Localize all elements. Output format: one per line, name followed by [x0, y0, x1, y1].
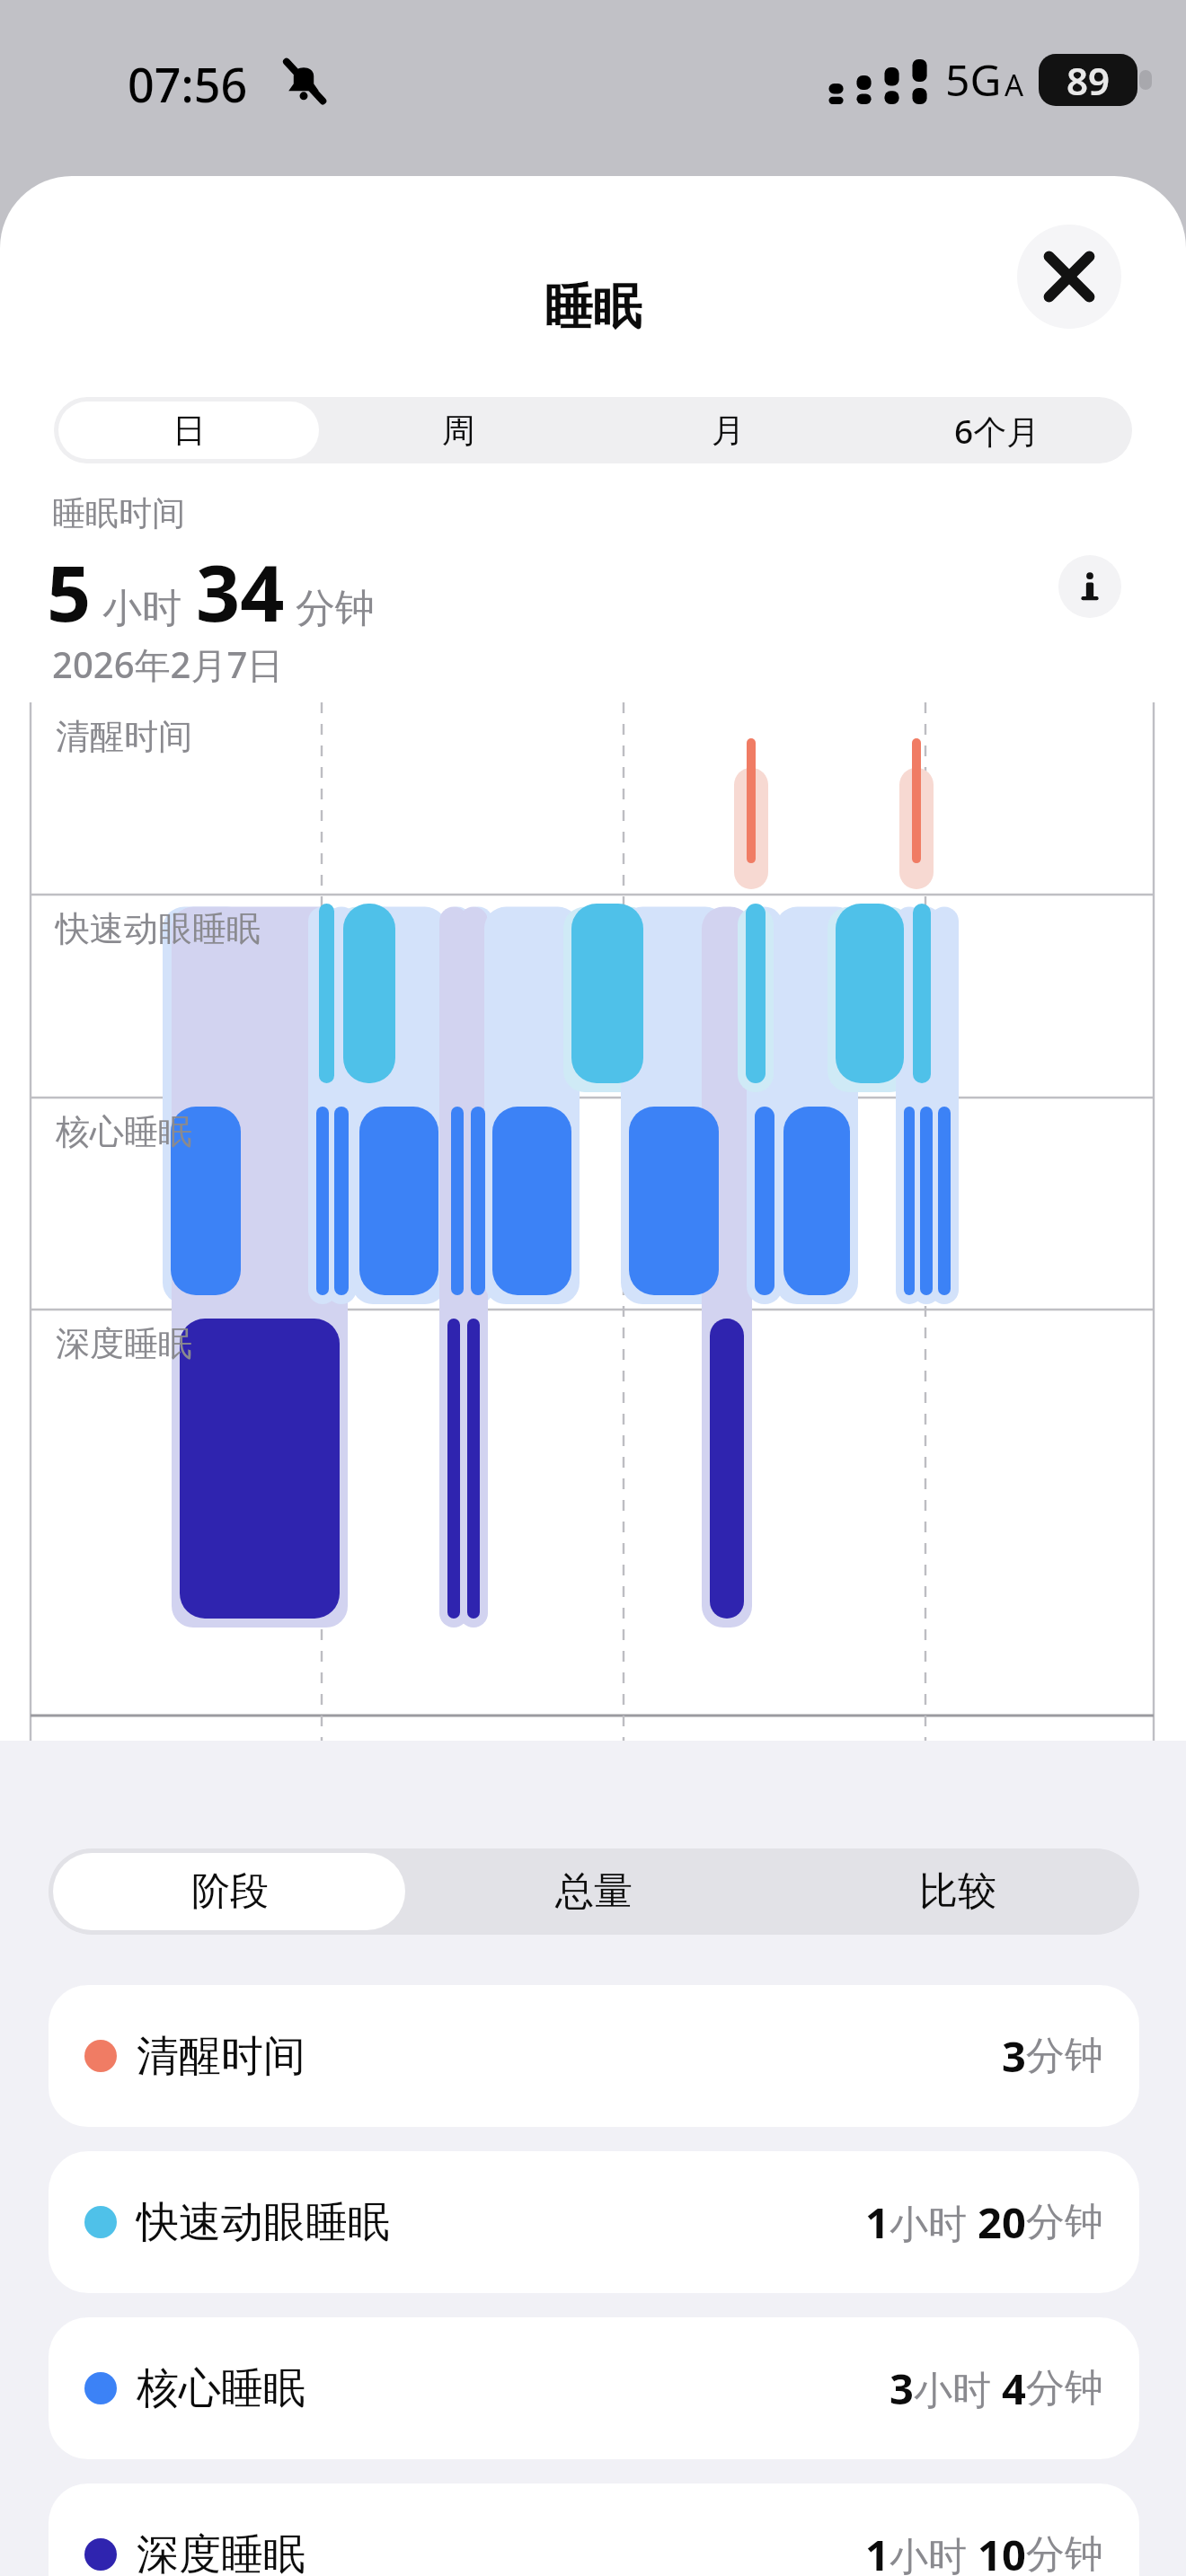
staticText: 睡眠: [0, 277, 1186, 338]
staticText: A: [1005, 65, 1024, 105]
staticText: 3: [889, 2360, 914, 2417]
staticText: 小时: [889, 2528, 978, 2576]
staticText: 5: [47, 539, 92, 644]
button[interactable]: 关闭: [1017, 225, 1121, 329]
staticText: 小时: [889, 2196, 978, 2249]
button[interactable]: 日: [54, 397, 323, 463]
staticText: 快速动眼睡眠: [56, 907, 261, 950]
staticText: 分钟: [1026, 2530, 1103, 2576]
staticText: 20: [978, 2193, 1026, 2251]
staticText: 日: [173, 410, 206, 452]
staticText: 比较: [919, 1867, 996, 1916]
staticText: 小时: [914, 2362, 1002, 2415]
staticText: 周: [442, 410, 475, 452]
button[interactable]: 信息: [1058, 555, 1121, 618]
button[interactable]: 阶段: [49, 1848, 412, 1935]
staticText: 快速动眼睡眠: [137, 2196, 390, 2249]
staticText: 核心睡眠: [137, 2362, 305, 2415]
staticText: 07:56: [128, 52, 248, 116]
staticText: 清醒时间: [137, 2030, 305, 2083]
staticText: 1: [865, 2526, 889, 2576]
button[interactable]: 月: [593, 397, 863, 463]
staticText: 3: [1002, 2027, 1026, 2085]
staticText: 6个月: [954, 408, 1040, 454]
staticText: 分钟: [1026, 2032, 1103, 2080]
staticText: 34: [196, 539, 285, 644]
staticText: 睡眠时间: [52, 492, 185, 534]
button[interactable]: 快速动眼睡眠: [49, 2151, 1139, 2293]
staticText: 深度睡眠: [137, 2528, 305, 2576]
button[interactable]: 6个月: [863, 397, 1132, 463]
staticText: 核心睡眠: [56, 1110, 192, 1153]
staticText: 2026年2月7日: [52, 640, 284, 689]
button[interactable]: 比较: [775, 1848, 1139, 1935]
staticText: 4: [1002, 2360, 1026, 2417]
staticText: 月: [712, 410, 745, 452]
staticText: 阶段: [191, 1867, 269, 1916]
button[interactable]: 周: [323, 397, 593, 463]
staticText: 总量: [555, 1867, 633, 1916]
staticText: 分钟: [1026, 2198, 1103, 2246]
button[interactable]: 清醒时间: [49, 1985, 1139, 2127]
staticText: 清醒时间: [56, 715, 192, 758]
staticText: 深度睡眠: [56, 1322, 192, 1365]
button[interactable]: 深度睡眠: [49, 2483, 1139, 2576]
staticText: 89: [1067, 55, 1111, 106]
staticText: 10: [978, 2526, 1026, 2576]
staticText: 1: [865, 2193, 889, 2251]
staticText: 5G: [945, 50, 1002, 109]
staticText: 小时: [102, 584, 181, 633]
staticText: 分钟: [296, 584, 375, 633]
staticText: 分钟: [1026, 2364, 1103, 2413]
button[interactable]: 核心睡眠: [49, 2317, 1139, 2459]
button[interactable]: 总量: [412, 1848, 775, 1935]
